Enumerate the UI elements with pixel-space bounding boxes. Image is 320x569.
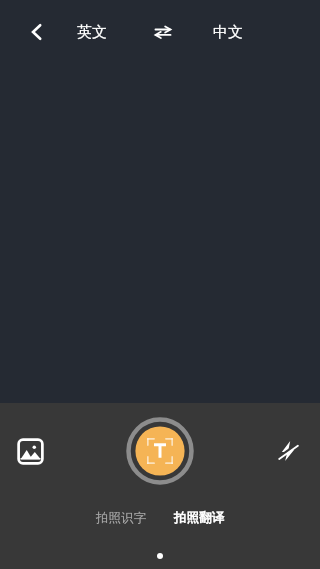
button[interactable]: Flash off — [268, 431, 308, 471]
button[interactable]: Capture and translate — [127, 418, 193, 484]
staticText: 拍照识字 — [96, 510, 146, 526]
staticText: 中文 — [213, 23, 243, 42]
staticText: 拍照翻译 — [174, 510, 224, 526]
button[interactable]: Swap languages — [145, 14, 181, 50]
button[interactable]: Back — [20, 15, 54, 49]
button[interactable]: 拍照识字 — [86, 506, 156, 530]
staticText: 英文 — [77, 23, 107, 42]
button[interactable]: Gallery — [10, 431, 50, 471]
button[interactable]: 拍照翻译 — [164, 506, 234, 530]
button[interactable]: 英文 — [60, 12, 124, 52]
button[interactable]: 中文 — [196, 12, 260, 52]
